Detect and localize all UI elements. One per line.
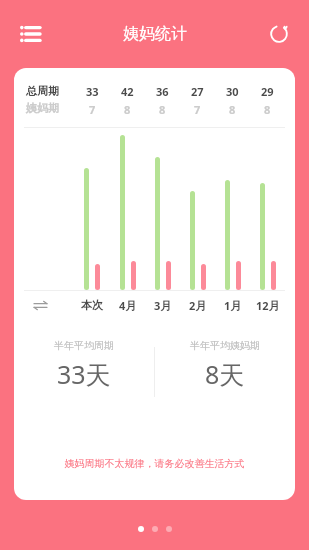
staticText: 本次 [81,298,103,312]
button[interactable]: 4月 [110,291,145,319]
staticText: 8 [159,102,166,117]
button[interactable]: 半年平均周期 [14,339,154,405]
staticText: 7 [194,102,201,117]
staticText: 姨妈统计 [123,24,187,44]
staticText: 42 [121,84,134,99]
button[interactable]: Menu [12,16,48,52]
staticText: 半年平均周期 [54,339,114,352]
staticText: 27 [191,84,204,99]
staticText: 7 [89,102,96,117]
staticText: 29 [261,84,274,99]
staticText: 姨妈周期不太规律，请务必改善生活方式 [26,457,283,470]
staticText: 姨妈期 [26,101,59,115]
staticText: 8 [229,102,236,117]
button[interactable]: 1月 [215,291,250,319]
staticText: 12月 [256,298,280,313]
staticText: 8天 [205,357,245,391]
button[interactable]: 本次 [74,291,110,319]
button[interactable]: 12月 [250,291,285,319]
staticText: 4月 [119,298,137,313]
button[interactable]: Refresh [261,16,297,52]
staticText: 1月 [224,298,242,313]
staticText: 3月 [154,298,172,313]
staticText: 33 [86,84,99,99]
button[interactable]: 2月 [180,291,215,319]
staticText: 半年平均姨妈期 [190,339,260,352]
staticText: 8 [124,102,131,117]
staticText: 36 [156,84,169,99]
staticText: 30 [226,84,239,99]
staticText: 33天 [57,357,111,391]
button[interactable]: 半年平均姨妈期 [155,339,295,405]
button[interactable]: 3月 [145,291,180,319]
button[interactable]: Swap [26,291,74,319]
staticText: 8 [264,102,271,117]
staticText: 2月 [189,298,207,313]
staticText: 总周期 [26,84,59,98]
